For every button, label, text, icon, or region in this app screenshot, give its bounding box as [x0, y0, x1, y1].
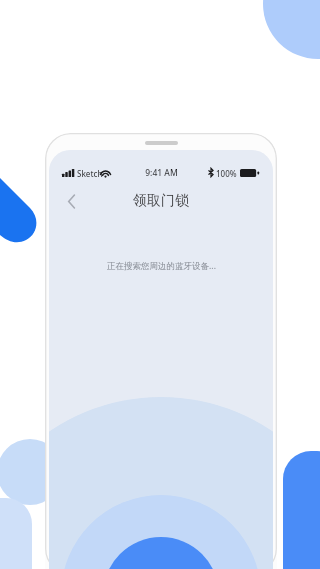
staticText: 正在搜索您周边的蓝牙设备...	[107, 260, 216, 272]
button[interactable]: Back	[56, 186, 86, 216]
staticText: 100%	[216, 168, 237, 179]
staticText: Sketch	[77, 168, 103, 179]
staticText: 9:41 AM	[145, 167, 178, 179]
staticText: 领取门锁	[133, 192, 189, 210]
